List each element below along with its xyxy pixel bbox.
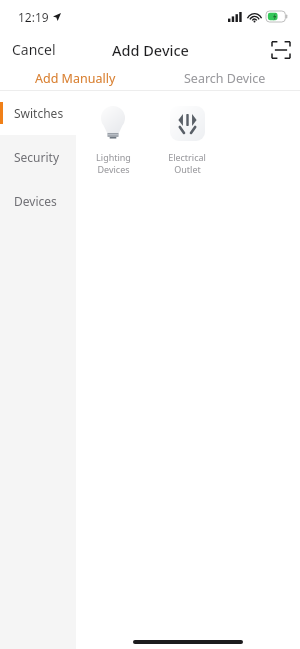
button[interactable]: Devices <box>0 179 76 223</box>
staticText: Electrical <box>168 151 206 163</box>
button[interactable]: Electrical <box>150 103 224 175</box>
button[interactable]: Search Device <box>150 66 300 90</box>
staticText: Add Device <box>112 40 189 60</box>
staticText: 12:19 <box>18 9 49 25</box>
button[interactable]: Switches <box>0 91 76 135</box>
button[interactable]: Cancel <box>0 33 68 66</box>
staticText: Devices <box>14 193 57 209</box>
staticText: Lighting <box>96 151 131 163</box>
button[interactable]: Scan QR code <box>262 33 300 66</box>
staticText: Security <box>14 149 60 165</box>
button[interactable]: Security <box>0 135 76 179</box>
staticText: Devices <box>97 163 130 175</box>
button[interactable]: Add Manually <box>0 66 150 90</box>
staticText: Add Manually <box>35 70 116 87</box>
staticText: Switches <box>14 105 64 121</box>
staticText: Search Device <box>184 70 266 87</box>
button[interactable]: Lighting <box>76 103 150 175</box>
staticText: Cancel <box>12 40 56 59</box>
staticText: Outlet <box>174 163 201 175</box>
